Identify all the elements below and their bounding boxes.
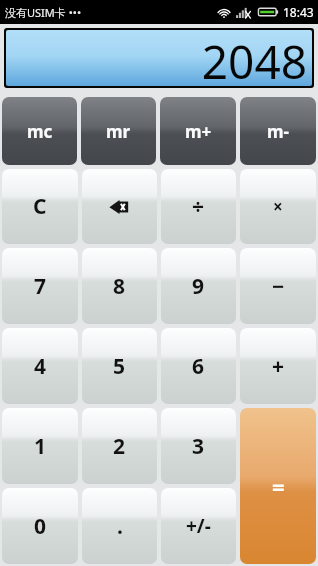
button[interactable]: + — [240, 328, 316, 404]
staticText: 1 — [34, 432, 47, 461]
staticText: 4 — [34, 352, 47, 381]
button[interactable]: − — [240, 248, 316, 324]
staticText: +/- — [186, 513, 211, 539]
staticText: m+ — [185, 120, 212, 143]
staticText: 18:43 — [283, 4, 314, 20]
button[interactable]: 4 — [2, 328, 78, 404]
button[interactable]: Backspace — [82, 169, 157, 244]
staticText: + — [272, 352, 285, 381]
button[interactable]: 1 — [2, 408, 78, 484]
button[interactable]: 7 — [2, 248, 78, 324]
staticText: 3 — [192, 432, 205, 461]
button[interactable]: +/- — [161, 488, 236, 564]
staticText: 7 — [34, 272, 47, 301]
staticText: 6 — [192, 352, 205, 381]
button[interactable]: 8 — [82, 248, 157, 324]
staticText: mc — [27, 120, 53, 143]
button[interactable]: m- — [240, 97, 316, 165]
button[interactable]: m+ — [160, 97, 236, 165]
staticText: m- — [267, 120, 290, 143]
staticText: 5 — [113, 352, 126, 381]
staticText: mr — [106, 120, 131, 143]
button[interactable]: = — [240, 408, 316, 564]
button[interactable]: mr — [81, 97, 156, 165]
staticText: − — [272, 272, 285, 301]
button[interactable]: 9 — [161, 248, 236, 324]
button[interactable]: 0 — [2, 488, 78, 564]
staticText: 2 — [113, 432, 126, 461]
staticText: 0 — [34, 512, 47, 541]
button[interactable]: 3 — [161, 408, 236, 484]
staticText: C — [33, 192, 47, 221]
staticText: ÷ — [192, 192, 205, 221]
button[interactable]: × — [240, 169, 316, 244]
button[interactable]: ÷ — [161, 169, 236, 244]
button[interactable]: C — [2, 169, 78, 244]
button[interactable]: mc — [2, 97, 77, 165]
staticText: = — [272, 471, 285, 501]
staticText: . — [117, 512, 123, 541]
button[interactable]: 6 — [161, 328, 236, 404]
staticText: 9 — [192, 272, 205, 301]
button[interactable]: 5 — [82, 328, 157, 404]
staticText: 2048 — [201, 30, 307, 84]
staticText: 8 — [113, 272, 126, 301]
staticText: 没有USIM卡 ••• — [5, 5, 82, 20]
staticText: × — [273, 195, 283, 218]
button[interactable]: . — [82, 488, 157, 564]
button[interactable]: 2 — [82, 408, 157, 484]
